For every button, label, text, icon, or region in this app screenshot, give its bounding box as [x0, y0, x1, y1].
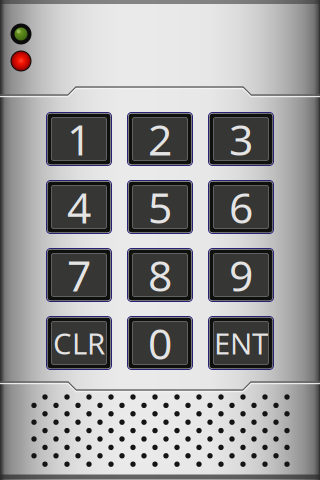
staticText: 1 [67, 111, 91, 167]
button[interactable]: 2 [127, 112, 192, 165]
button[interactable]: 5 [127, 180, 192, 233]
button[interactable]: ENT [208, 316, 273, 369]
button[interactable]: 8 [127, 248, 192, 301]
staticText: CLR [53, 323, 105, 362]
staticText: 5 [148, 179, 172, 235]
staticText: ENT [214, 323, 268, 362]
button[interactable]: 0 [127, 316, 192, 369]
button[interactable]: 7 [46, 248, 111, 301]
button[interactable]: CLR [46, 316, 111, 369]
staticText: 8 [148, 247, 172, 303]
staticText: 4 [67, 179, 91, 235]
staticText: 0 [148, 315, 172, 371]
button[interactable]: 6 [208, 180, 273, 233]
button[interactable]: 9 [208, 248, 273, 301]
staticText: 9 [229, 247, 253, 303]
staticText: 7 [67, 247, 91, 303]
button[interactable]: 3 [208, 112, 273, 165]
button[interactable]: 4 [46, 180, 111, 233]
staticText: 6 [229, 179, 253, 235]
button[interactable]: 1 [46, 112, 111, 165]
staticText: 2 [148, 111, 172, 167]
staticText: 3 [229, 111, 253, 167]
